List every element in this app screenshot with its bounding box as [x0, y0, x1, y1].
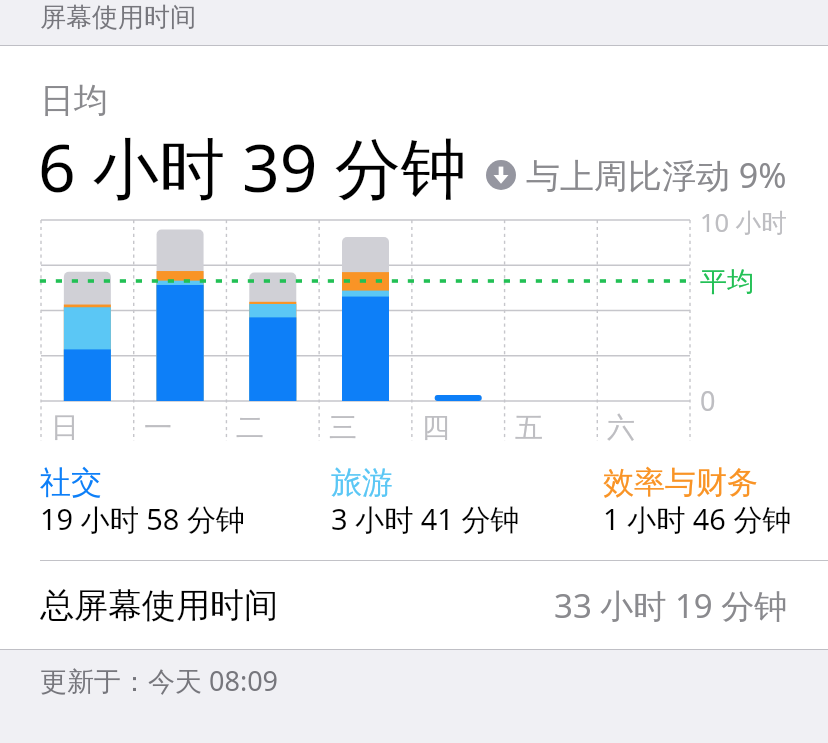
- staticText: 日: [51, 410, 79, 445]
- other: 下降: [486, 160, 516, 190]
- button[interactable]: 效率与财务: [603, 463, 758, 502]
- staticText: 五: [515, 410, 543, 445]
- button[interactable]: 旅游: [331, 463, 393, 502]
- staticText: 0: [700, 382, 716, 419]
- staticText: 屏幕使用时间: [40, 1, 196, 34]
- staticText: 19 小时 58 分钟: [40, 499, 245, 539]
- staticText: 四: [422, 410, 450, 445]
- button[interactable]: 社交: [40, 463, 102, 502]
- button[interactable]: 五: [505, 220, 598, 401]
- staticText: 3 小时 41 分钟: [331, 499, 520, 539]
- staticText: 1 小时 46 分钟: [603, 499, 792, 539]
- button[interactable]: 总屏幕使用时间: [0, 561, 828, 649]
- button[interactable]: 三: [319, 220, 412, 401]
- staticText: 一: [144, 410, 172, 445]
- button[interactable]: 二: [226, 220, 319, 401]
- staticText: 与上周比浮动 9%: [526, 152, 787, 198]
- staticText: 总屏幕使用时间: [40, 584, 278, 627]
- button[interactable]: 一: [134, 220, 227, 401]
- staticText: 三: [329, 410, 357, 445]
- staticText: 平均: [700, 265, 754, 299]
- button[interactable]: 六: [597, 220, 690, 401]
- staticText: 10 小时: [700, 205, 787, 240]
- button[interactable]: 四: [412, 220, 505, 401]
- button[interactable]: 屏幕使用时间: [0, 0, 828, 45]
- staticText: 更新于：今天 08:09: [40, 662, 279, 699]
- staticText: 六: [607, 410, 635, 445]
- button[interactable]: 日: [41, 220, 134, 401]
- staticText: 33 小时 19 分钟: [554, 583, 788, 628]
- staticText: 二: [236, 410, 264, 445]
- staticText: 日均: [40, 79, 108, 122]
- staticText: 6 小时 39 分钟: [38, 121, 467, 211]
